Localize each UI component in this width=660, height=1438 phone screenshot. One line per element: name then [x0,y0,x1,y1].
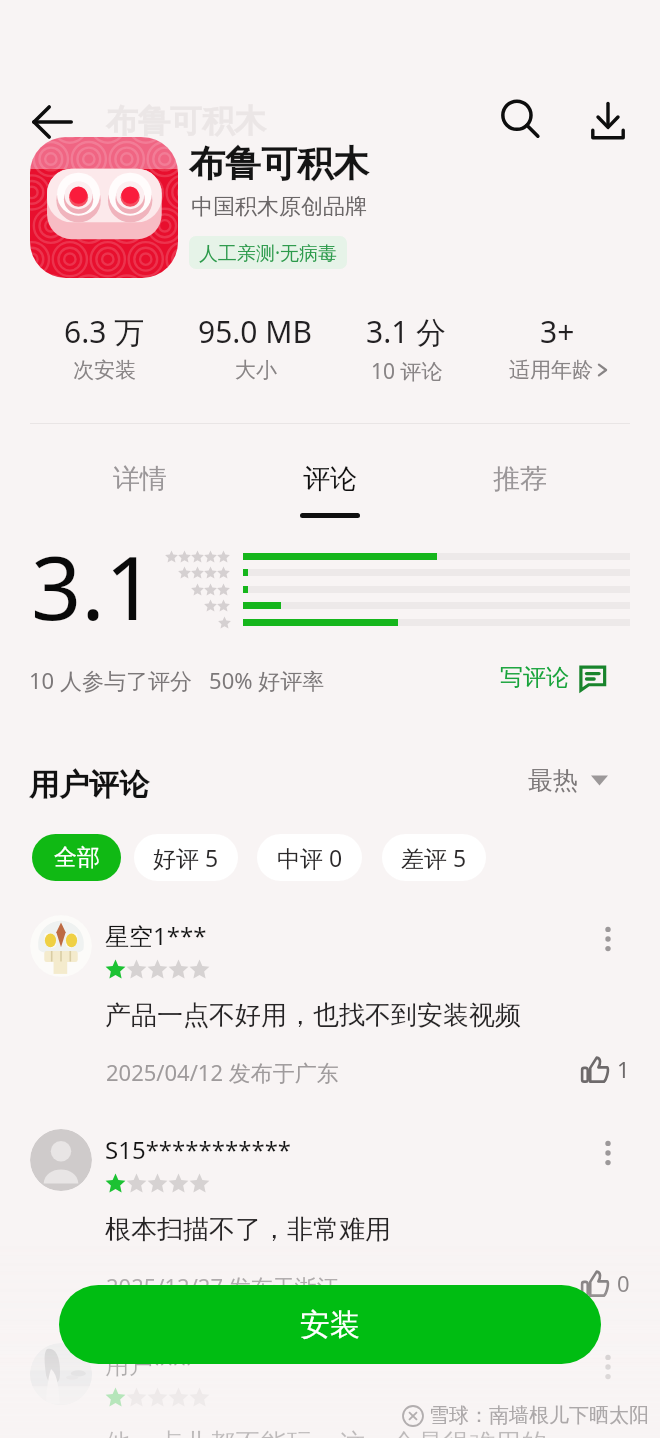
staticText: 好评 5 [153,842,219,873]
staticText: 全部 [54,843,100,872]
staticText: 雪球：南墙根儿下晒太阳 [429,1403,649,1428]
button[interactable]: 最热 [528,765,608,796]
staticText: 3+ [540,311,575,352]
button[interactable]: 写评论 [500,663,606,692]
staticText: 用户评论 [29,766,149,804]
staticText: 用户*** [105,1347,193,1380]
staticText: 布鲁可积木 [106,101,266,141]
button[interactable]: 人工亲测·无病毒 [189,236,347,269]
button[interactable]: 全部 [32,834,121,881]
staticText: 详情 [113,462,167,496]
staticText: 最热 [528,765,578,796]
button[interactable]: Search [494,95,546,147]
button[interactable]: 0 [581,1268,630,1298]
staticText: 根本扫描不了，非常难用 [105,1213,391,1246]
button[interactable]: More options [588,919,628,959]
staticText: 产品一点不好用，也找不到安装视频 [105,999,521,1032]
staticText: 10 人参与了评分 50% 好评率 [29,665,325,695]
staticText: 3.1 分 [366,311,447,352]
button[interactable]: 95.0 MB [180,311,331,383]
button[interactable]: 3.1 分 [331,311,482,386]
staticText: 差评 5 [401,842,467,873]
button[interactable]: 差评 5 [382,834,486,881]
staticText: 评论 [303,462,357,496]
staticText: 2025/04/12 发布于广东 [106,1057,339,1087]
button[interactable]: 安装 [59,1285,601,1364]
staticText: 10 评论 [371,357,443,386]
staticText: 适用年龄 [509,357,593,383]
staticText: 安装 [300,1306,360,1344]
staticText: 写评论 [500,663,569,692]
staticText: 0 [617,1268,630,1298]
staticText: 2025/12/27 发布于浙江 [106,1271,339,1301]
button[interactable]: 1 [581,1054,630,1084]
staticText: 中评 0 [277,842,343,873]
button[interactable]: More options [588,1133,628,1173]
button[interactable]: 6.3 万 [29,311,180,383]
button[interactable]: 好评 5 [134,834,238,881]
button[interactable]: 详情 [80,450,200,528]
staticText: 1 [617,1054,630,1084]
button[interactable]: Downloads [582,95,634,147]
staticText: 他一点儿都不能玩，这一个是很难用的 [105,1427,547,1438]
staticText: 95.0 MB [198,311,313,352]
staticText: 人工亲测·无病毒 [199,240,338,266]
staticText: 星空1*** [105,919,207,952]
button[interactable]: 中评 0 [257,834,362,881]
staticText: 推荐 [493,462,547,496]
staticText: 大小 [235,357,277,383]
staticText: 布鲁可积木 [189,141,369,186]
staticText: 中国积木原创品牌 [191,193,367,221]
button[interactable]: 推荐 [460,450,580,528]
button[interactable]: 评论 [270,450,390,528]
staticText: 3.1 [31,526,156,646]
button[interactable]: More options [588,1347,628,1387]
button[interactable]: 3+ [482,311,633,383]
staticText: S15*********** [105,1133,292,1166]
staticText: 6.3 万 [64,311,145,352]
staticText: 次安装 [73,357,136,383]
button[interactable]: Back [24,94,80,150]
